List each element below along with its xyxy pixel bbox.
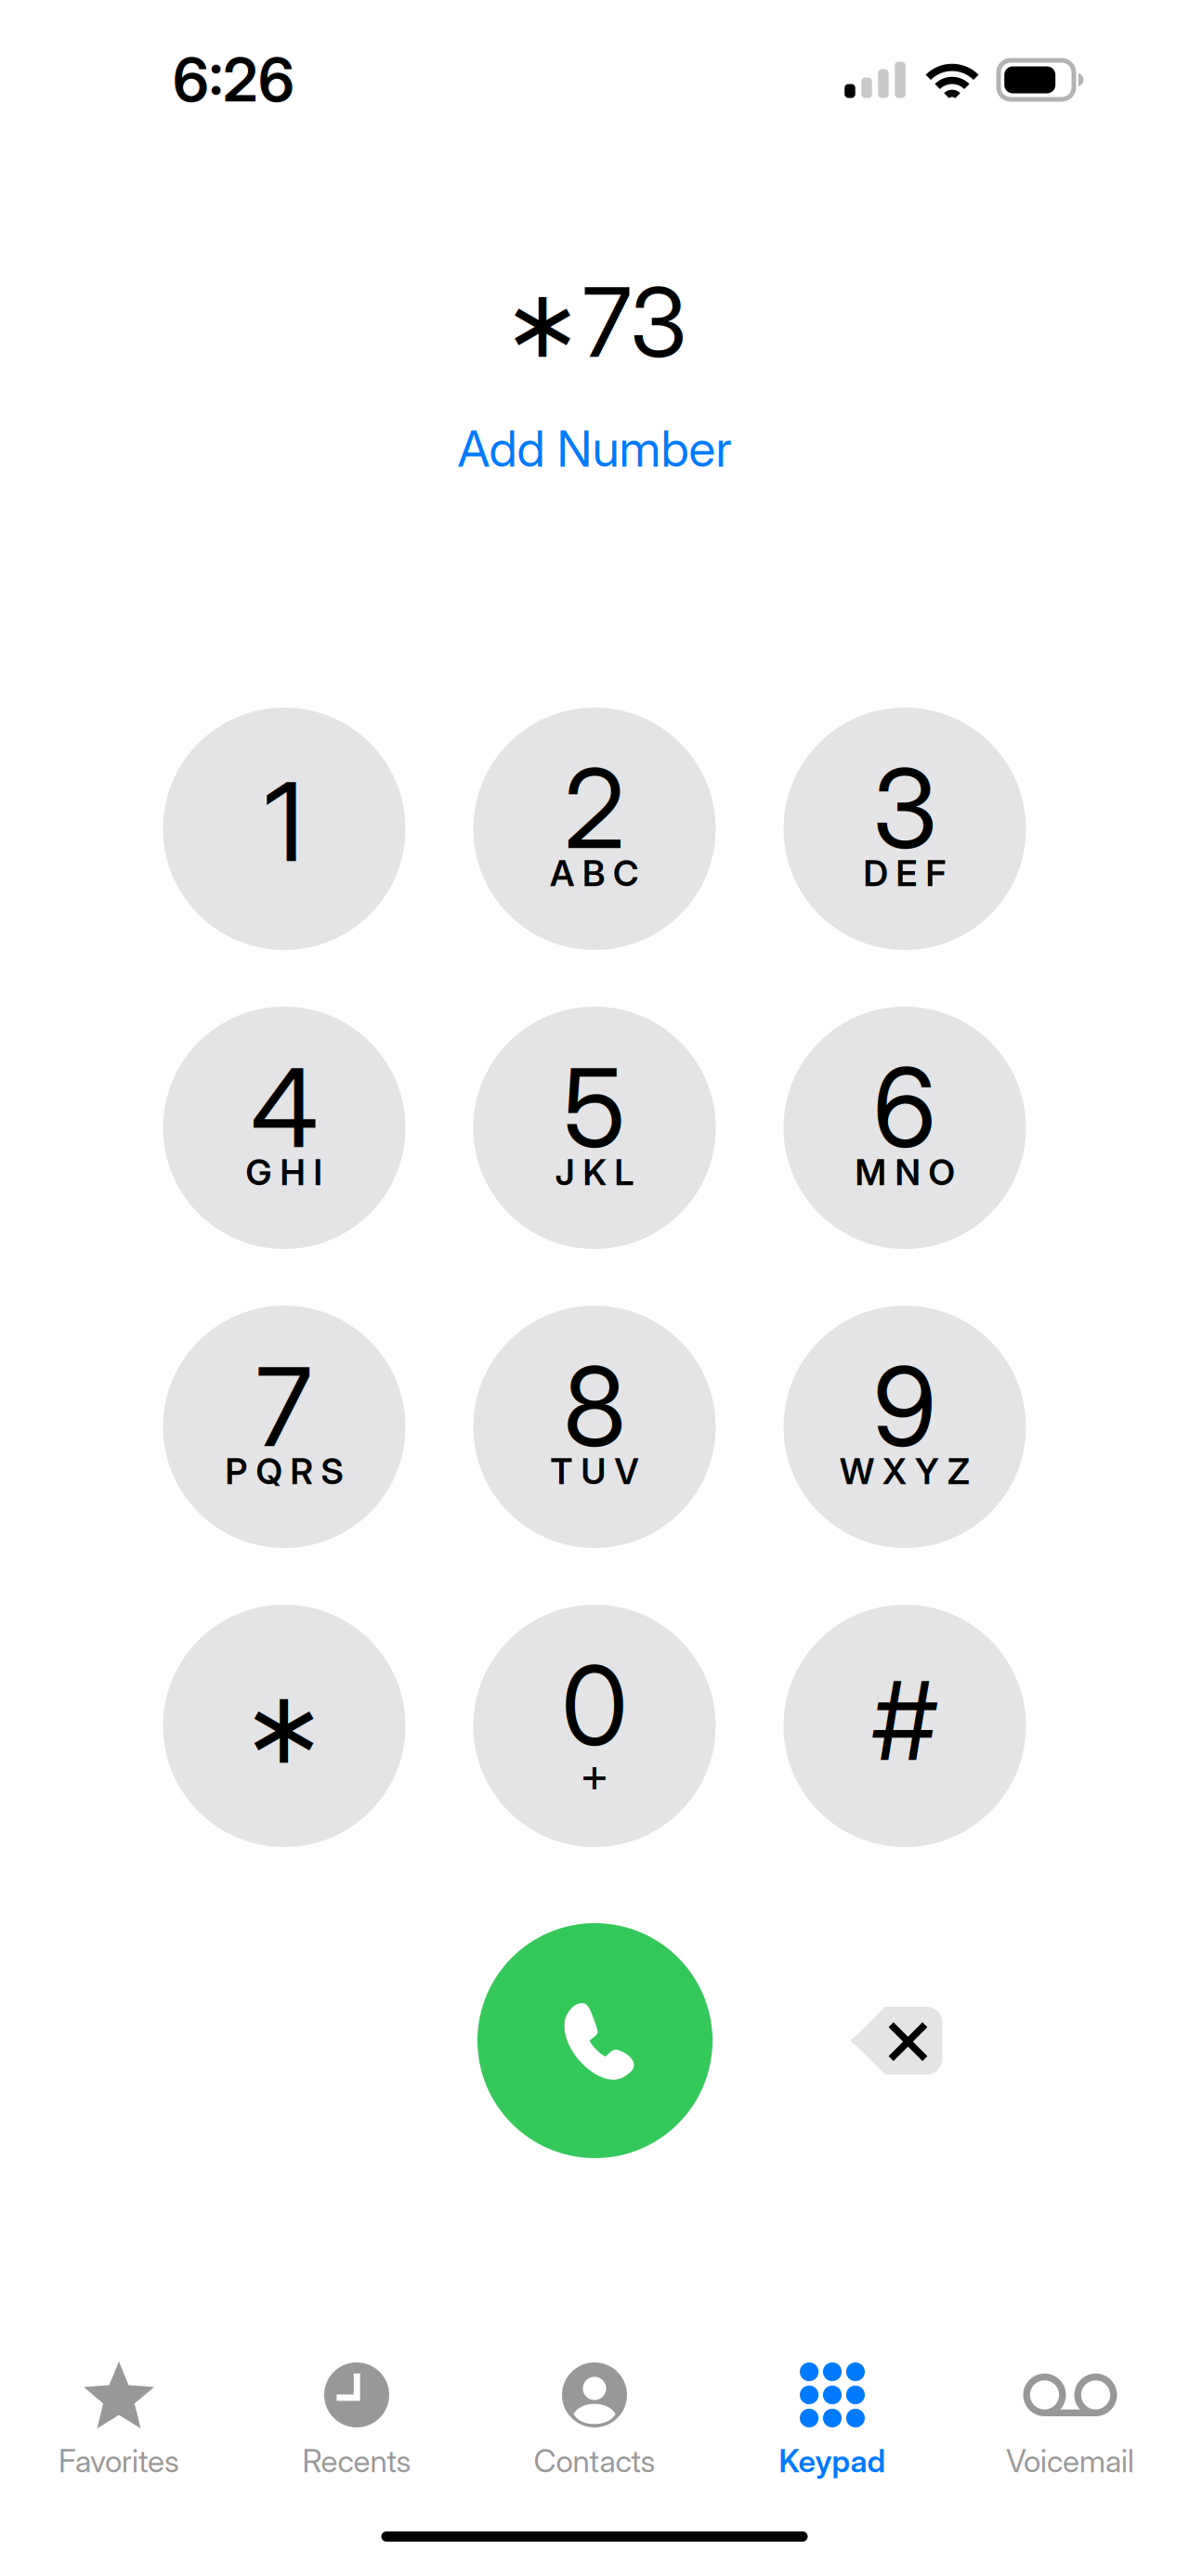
staticText: M N O bbox=[855, 1151, 954, 1194]
staticText: Voicemail bbox=[1006, 2442, 1134, 2480]
button[interactable]: 5 bbox=[473, 1007, 716, 1249]
staticText: 0 bbox=[561, 1639, 628, 1771]
button[interactable]: Add Number bbox=[457, 416, 732, 481]
staticText: 4 bbox=[251, 1041, 318, 1173]
button[interactable]: Contacts bbox=[476, 2312, 713, 2486]
staticText: A B C bbox=[550, 852, 639, 895]
button[interactable]: 1 bbox=[163, 708, 405, 950]
button[interactable]: Recents bbox=[238, 2312, 476, 2486]
button[interactable]: Voicemail bbox=[951, 2312, 1189, 2486]
staticText: Add Number bbox=[457, 419, 732, 478]
staticText: 1 bbox=[264, 755, 304, 887]
button[interactable]: 6 bbox=[784, 1007, 1026, 1249]
button[interactable]: Call bbox=[477, 1923, 712, 2158]
staticText: 3 bbox=[872, 742, 937, 874]
staticText: 6 bbox=[873, 1041, 937, 1173]
button[interactable]: 8 bbox=[473, 1306, 716, 1548]
button[interactable]: # bbox=[784, 1605, 1026, 1847]
button[interactable]: 9 bbox=[784, 1306, 1026, 1548]
staticText: T U V bbox=[550, 1450, 639, 1493]
button[interactable]: 4 bbox=[163, 1007, 405, 1249]
staticText: Favorites bbox=[59, 2442, 179, 2480]
staticText: 8 bbox=[563, 1340, 626, 1472]
button[interactable]: 3 bbox=[784, 708, 1026, 950]
button[interactable]: ∗ bbox=[163, 1605, 405, 1847]
button[interactable]: Favorites bbox=[0, 2312, 238, 2486]
staticText: W X Y Z bbox=[840, 1450, 970, 1493]
staticText: Recents bbox=[302, 2442, 411, 2480]
button[interactable]: 2 bbox=[473, 708, 716, 950]
staticText: 6:26 bbox=[173, 44, 294, 116]
staticText: 9 bbox=[873, 1340, 937, 1472]
button[interactable]: Keypad bbox=[713, 2312, 951, 2486]
staticText: 2 bbox=[564, 742, 625, 874]
staticText: # bbox=[872, 1654, 937, 1786]
staticText: 5 bbox=[563, 1041, 626, 1173]
staticText: + bbox=[580, 1746, 609, 1803]
button[interactable]: 7 bbox=[163, 1306, 405, 1548]
staticText: D E F bbox=[863, 852, 946, 895]
staticText: ∗ bbox=[242, 1669, 327, 1787]
staticText: ∗73 bbox=[503, 265, 686, 380]
staticText: G H I bbox=[246, 1151, 323, 1194]
staticText: P Q R S bbox=[225, 1450, 343, 1493]
staticText: Contacts bbox=[534, 2442, 655, 2480]
staticText: 7 bbox=[256, 1340, 313, 1472]
staticText: J K L bbox=[555, 1151, 634, 1194]
staticText: Keypad bbox=[779, 2442, 886, 2480]
button[interactable]: Delete bbox=[838, 1957, 956, 2124]
button[interactable]: 0 bbox=[473, 1605, 716, 1847]
